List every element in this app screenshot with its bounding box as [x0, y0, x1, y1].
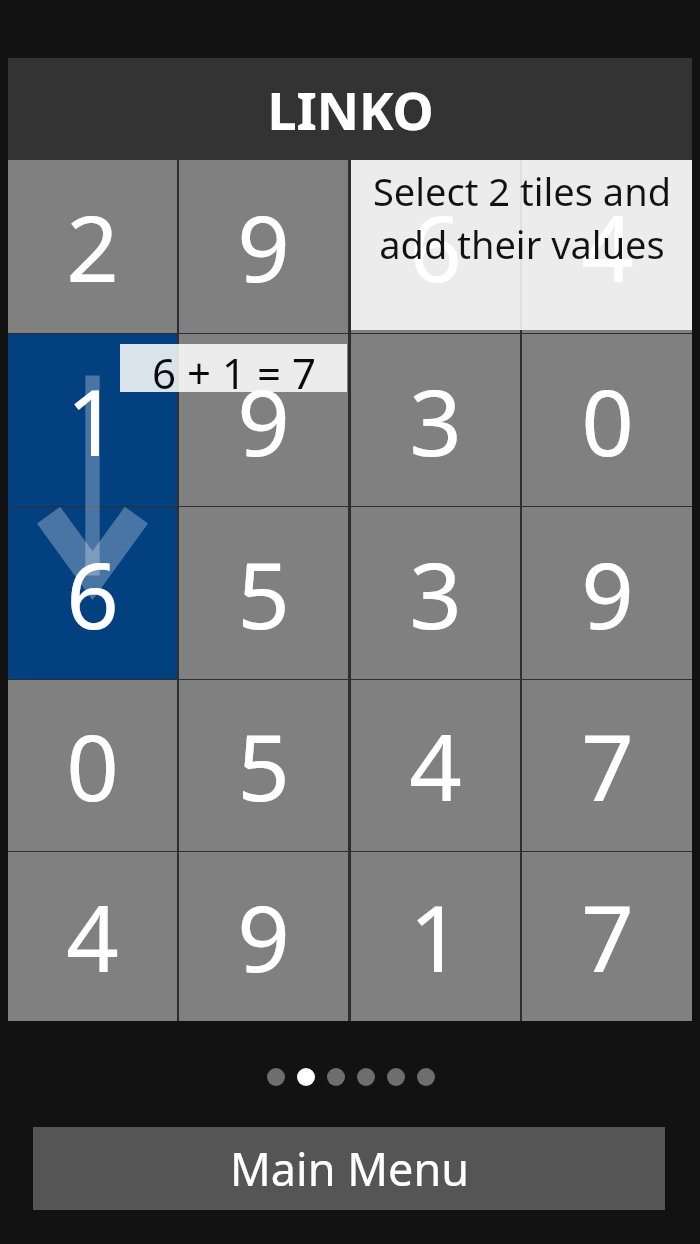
- button[interactable]: 1: [8, 334, 177, 506]
- button[interactable]: Main Menu: [33, 1127, 665, 1210]
- staticText: 1: [66, 358, 119, 483]
- staticText: 0: [66, 703, 119, 828]
- button[interactable]: 4: [351, 680, 520, 851]
- button[interactable]: 5: [179, 507, 348, 679]
- button[interactable]: 9: [179, 160, 348, 333]
- button[interactable]: 2: [8, 160, 177, 333]
- button[interactable]: 3: [351, 507, 520, 679]
- staticText: Select 2 tiles and add their values: [372, 165, 672, 325]
- button[interactable]: 5: [179, 680, 348, 851]
- staticText: 5: [237, 531, 290, 656]
- staticText: 1: [409, 874, 462, 999]
- staticText: 2: [66, 184, 119, 309]
- staticText: 4: [581, 184, 634, 309]
- staticText: 3: [409, 531, 462, 656]
- staticText: Main Menu: [230, 1138, 469, 1199]
- button[interactable]: 0: [522, 334, 692, 506]
- button[interactable]: 4: [8, 852, 177, 1021]
- staticText: 7: [581, 874, 634, 999]
- staticText: 5: [237, 703, 290, 828]
- button[interactable]: 3: [351, 334, 520, 506]
- button[interactable]: 1: [351, 852, 520, 1021]
- staticText: 4: [409, 703, 462, 828]
- button[interactable]: 0: [8, 680, 177, 851]
- button[interactable]: 6: [8, 507, 177, 679]
- staticText: 6 + 1 = 7: [152, 344, 316, 392]
- staticText: LINKO: [267, 74, 434, 145]
- staticText: 0: [581, 358, 634, 483]
- staticText: 3: [409, 358, 462, 483]
- staticText: 9: [237, 358, 290, 483]
- button[interactable]: 9: [522, 507, 692, 679]
- staticText: 9: [237, 874, 290, 999]
- staticText: 9: [581, 531, 634, 656]
- button[interactable]: 6: [351, 160, 520, 333]
- button[interactable]: 7: [522, 852, 692, 1021]
- button[interactable]: 7: [522, 680, 692, 851]
- staticText: 7: [581, 703, 634, 828]
- button[interactable]: 9: [179, 852, 348, 1021]
- staticText: 6: [409, 184, 462, 309]
- button[interactable]: 4: [522, 160, 692, 333]
- button[interactable]: 9: [179, 334, 348, 506]
- staticText: 4: [66, 874, 119, 999]
- staticText: 6: [66, 531, 119, 656]
- staticText: 9: [237, 184, 290, 309]
